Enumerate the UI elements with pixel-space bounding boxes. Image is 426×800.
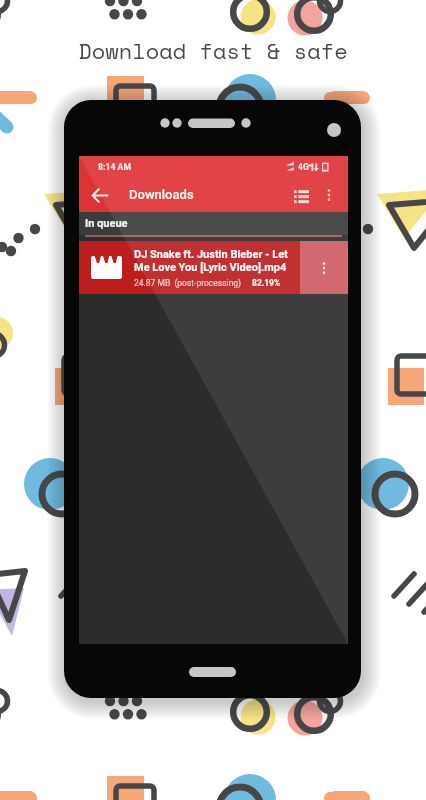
staticText: 8:14 AM xyxy=(98,162,132,172)
button[interactable]: Sort list xyxy=(286,180,316,210)
staticText: Download fast & safe xyxy=(78,34,348,67)
staticText: DJ Snake ft. Justin Bieber - Let xyxy=(134,248,288,261)
staticText: Me Love You [Lyric Video].mp4 xyxy=(134,261,287,274)
staticText: 4G xyxy=(298,162,309,172)
button[interactable]: DJ Snake ft. Justin Bieber - Let xyxy=(79,241,348,294)
button[interactable]: Back xyxy=(84,180,114,210)
staticText: In queue xyxy=(85,217,128,230)
button[interactable]: Item options xyxy=(299,241,348,294)
staticText: 82.19% xyxy=(252,278,281,288)
staticText: 24.87 MB (post-processing) xyxy=(134,278,242,288)
staticText: + xyxy=(308,161,312,168)
staticText: Downloads xyxy=(129,187,194,202)
button[interactable]: More options xyxy=(316,182,342,208)
